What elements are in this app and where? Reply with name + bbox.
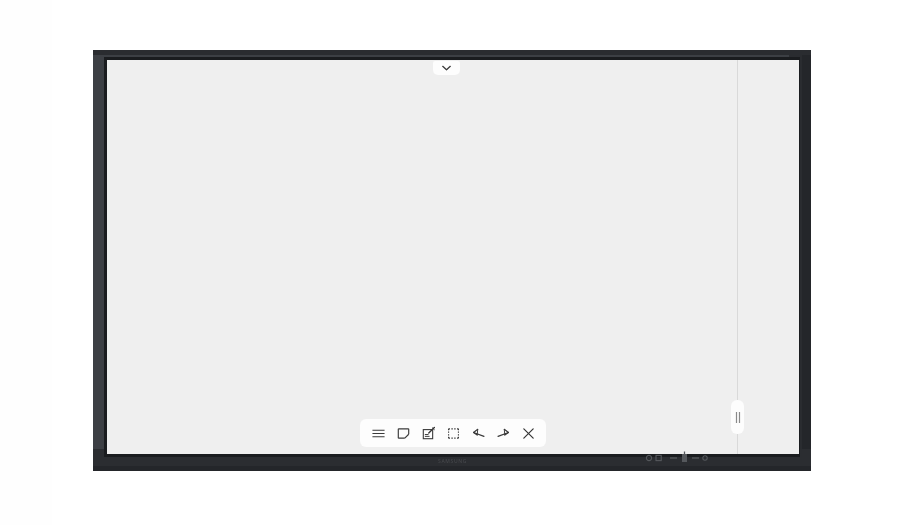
button[interactable]: Redo [494, 424, 512, 442]
button[interactable]: Resize split [731, 400, 744, 434]
button[interactable]: New note [394, 424, 412, 442]
button[interactable]: Close [519, 424, 537, 442]
button[interactable]: Display controls [645, 452, 709, 464]
button[interactable]: Edit [419, 424, 437, 442]
button[interactable]: Undo [469, 424, 487, 442]
button[interactable]: Menu [369, 424, 387, 442]
staticText: SAMSUNG [438, 458, 467, 465]
button[interactable]: Expand toolbar [433, 61, 460, 75]
button[interactable]: Select area [444, 424, 462, 442]
